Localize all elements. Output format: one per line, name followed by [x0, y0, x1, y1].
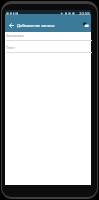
staticText: Заголовок	[6, 33, 24, 38]
staticText: Добавление записи	[17, 23, 55, 28]
button[interactable]: Back	[5, 21, 17, 29]
staticText: 20:58	[79, 11, 90, 17]
staticText: Текст	[6, 45, 15, 50]
button[interactable]: Save	[80, 21, 91, 29]
